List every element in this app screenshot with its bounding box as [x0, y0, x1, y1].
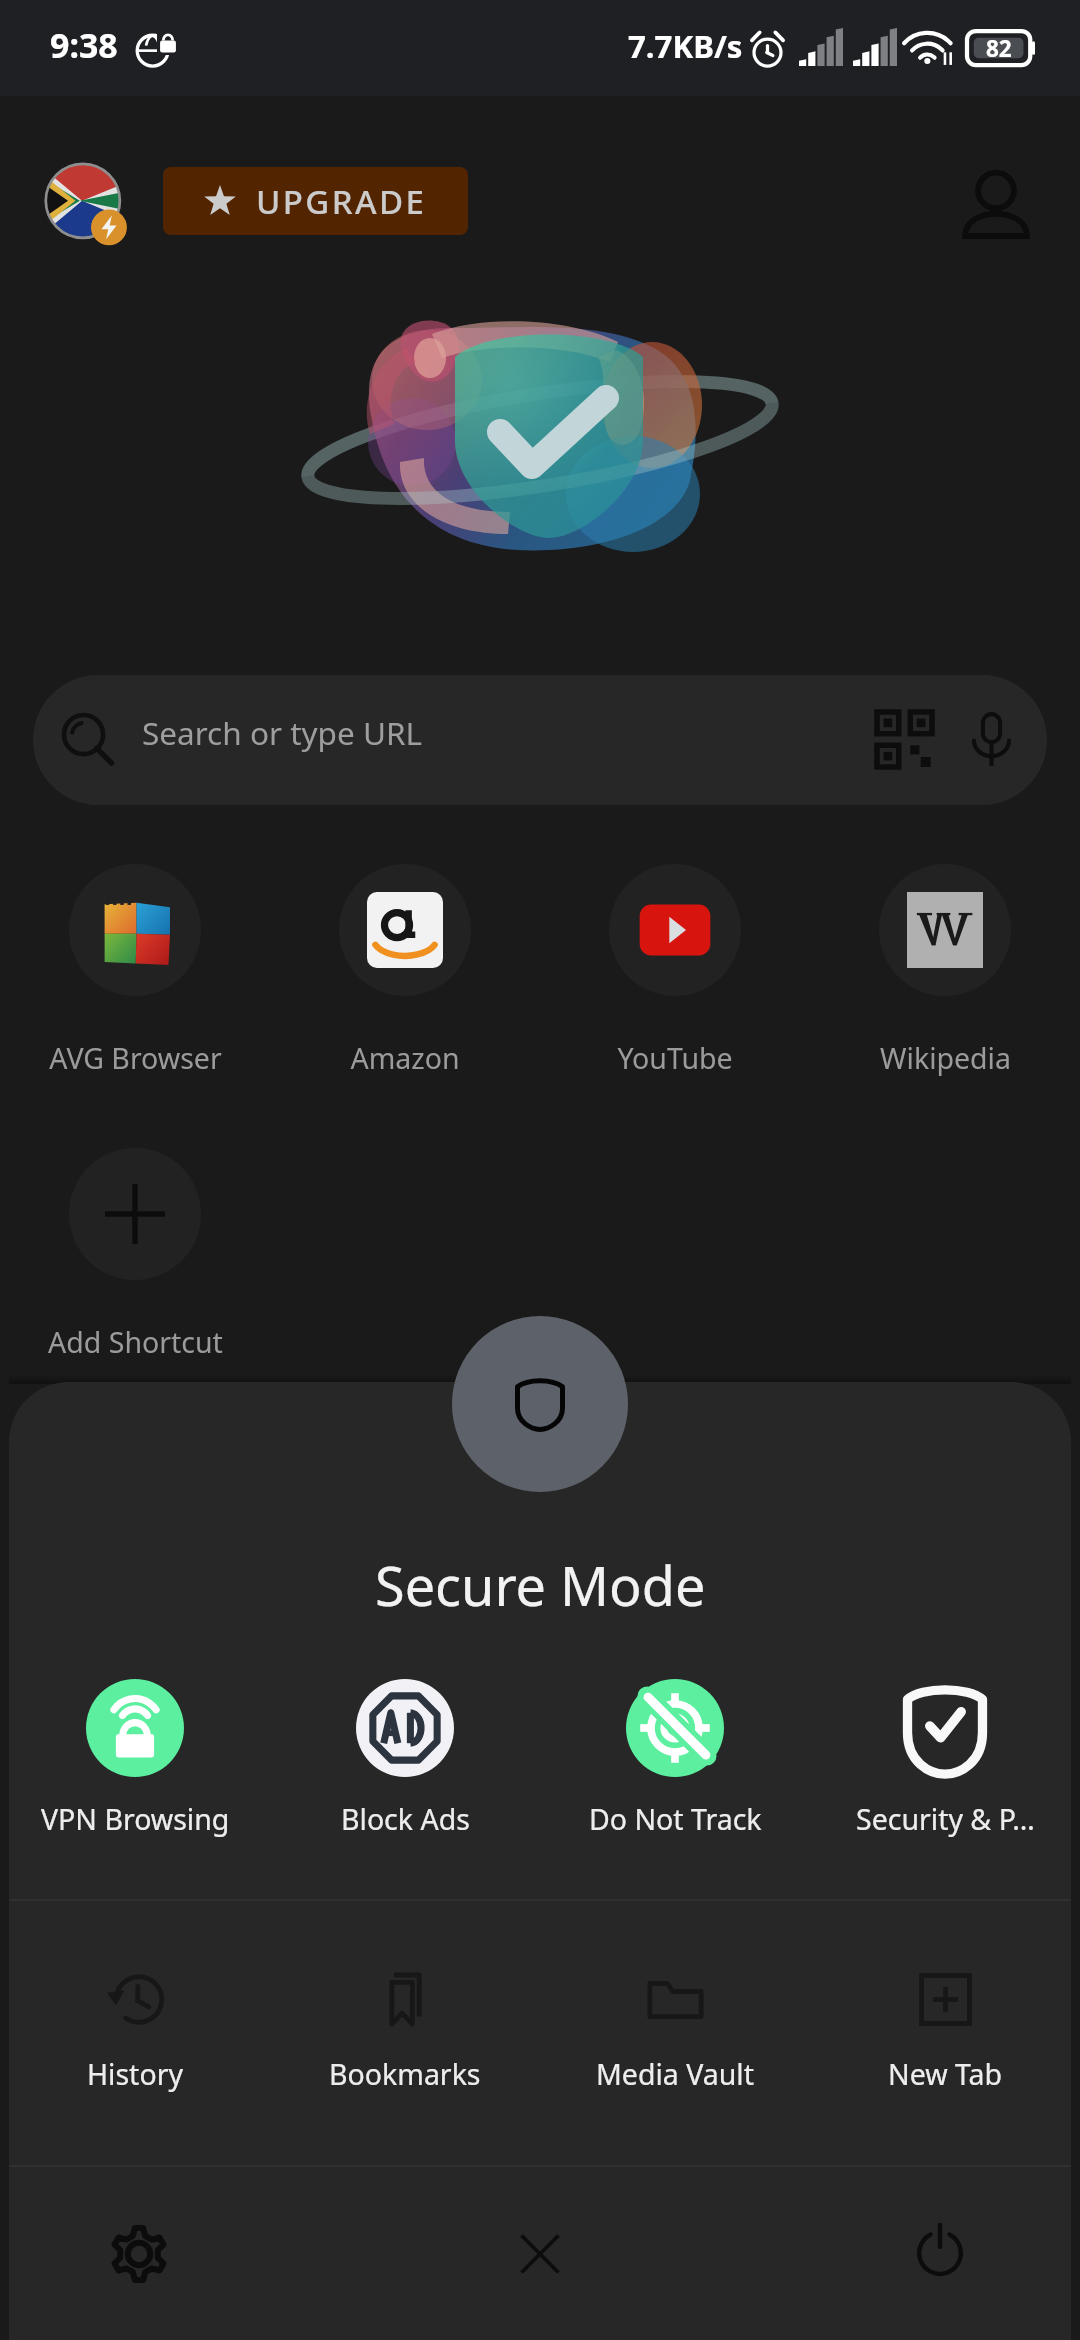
staticText: UPGRADE	[256, 179, 427, 224]
button[interactable]: Exit	[880, 2194, 1000, 2314]
staticText: Block Ads	[341, 1800, 470, 1839]
button[interactable]: Security & P…	[810, 1679, 1080, 1839]
button[interactable]: Media Vault	[540, 1971, 810, 2094]
button[interactable]: Block Ads	[270, 1679, 540, 1839]
button[interactable]: Add Shortcut	[0, 1148, 270, 1362]
staticText: Secure Mode	[375, 1548, 706, 1622]
staticText: Media Vault	[596, 2055, 754, 2094]
button[interactable]: New Tab	[810, 1971, 1080, 2094]
staticText: 7.7KB/s	[628, 25, 743, 67]
button[interactable]: Do Not Track	[540, 1679, 810, 1839]
button[interactable]: Account	[937, 146, 1055, 264]
staticText: Add Shortcut	[48, 1323, 223, 1362]
button[interactable]: VPN Browsing	[0, 1679, 270, 1839]
staticText: Search or type URL	[142, 711, 423, 754]
staticText: Amazon	[350, 1039, 460, 1078]
staticText: New Tab	[888, 2055, 1003, 2094]
button[interactable]: Close	[480, 2194, 600, 2314]
button[interactable]: Region	[45, 163, 123, 241]
button[interactable]: Settings	[79, 2194, 199, 2314]
button[interactable]: Wikipedia	[810, 864, 1080, 1078]
staticText: 9:38	[50, 22, 118, 68]
staticText: Wikipedia	[880, 1039, 1011, 1078]
button[interactable]: History	[0, 1971, 270, 2094]
staticText: Do Not Track	[589, 1800, 762, 1839]
button[interactable]: Amazon	[270, 864, 540, 1078]
button[interactable]: YouTube	[540, 864, 810, 1078]
staticText: YouTube	[617, 1039, 733, 1078]
button[interactable]: UPGRADE	[163, 167, 468, 235]
staticText: VPN Browsing	[41, 1800, 230, 1839]
staticText: Security & P…	[856, 1800, 1035, 1839]
button[interactable]: Bookmarks	[270, 1971, 540, 2094]
staticText: AVG Browser	[49, 1039, 222, 1078]
button[interactable]: AVG Browser	[0, 864, 270, 1078]
staticText: Bookmarks	[329, 2055, 481, 2094]
staticText: History	[87, 2055, 183, 2094]
button[interactable]: Search or type URL	[33, 675, 1047, 805]
staticText: 82	[986, 33, 1012, 64]
button[interactable]: Secure Mode	[452, 1316, 628, 1492]
